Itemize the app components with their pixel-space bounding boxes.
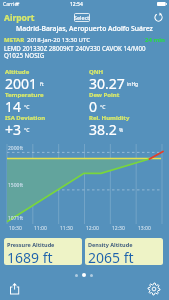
staticText: Airport — [4, 12, 35, 24]
staticText: Temperature — [5, 91, 44, 99]
staticText: Density Altitude — [88, 241, 133, 248]
staticText: 1500ft — [8, 182, 23, 189]
button[interactable]: Density Altitude — [85, 238, 163, 265]
staticText: 10:30 — [9, 225, 22, 232]
staticText: inHg — [127, 81, 139, 88]
staticText: 1071ft — [8, 215, 23, 222]
staticText: Q1025 NOSIG — [4, 51, 45, 59]
staticText: 30.27 — [89, 74, 125, 93]
staticText: Madrid-Barajas, Aeropuerto Adolfo Suárez — [16, 24, 153, 33]
staticText: Select — [74, 14, 90, 21]
staticText: Dew Point — [89, 91, 120, 99]
staticText: ft — [40, 81, 44, 88]
button[interactable]: Refresh — [152, 11, 165, 24]
staticText: 2001 — [5, 74, 38, 93]
staticText: Altitude — [5, 68, 30, 76]
staticText: Carrier — [3, 1, 20, 8]
button[interactable]: Share — [8, 281, 22, 295]
staticText: 2018-Jan-20 13:30 UTC — [27, 36, 91, 44]
staticText: METAR — [4, 36, 25, 44]
staticText: °C — [24, 127, 30, 134]
button[interactable]: Settings — [147, 282, 161, 296]
staticText: % — [119, 127, 124, 134]
staticText: 38.2 — [89, 120, 117, 139]
staticText: 12:30 — [112, 225, 125, 232]
staticText: 11:30 — [60, 225, 73, 232]
button[interactable]: Airport — [4, 12, 35, 24]
staticText: 1689 ft — [7, 248, 53, 265]
staticText: 2000ft — [8, 145, 23, 152]
staticText: +3 — [5, 120, 22, 139]
staticText: LEMD 201330Z 28009KT 240V330 CAVOK 14/M0… — [4, 44, 146, 52]
staticText: 0 — [89, 97, 98, 116]
staticText: QNH — [89, 68, 104, 76]
staticText: 11:00 — [34, 225, 47, 232]
staticText: 2065 ft — [88, 248, 134, 265]
staticText: 12:54 — [70, 1, 83, 8]
staticText: °C — [24, 104, 30, 111]
staticText: °C — [100, 104, 106, 111]
button[interactable]: Pressure Altitude — [4, 238, 82, 265]
staticText: 13:00 — [138, 225, 151, 232]
staticText: Rel. Humidity — [89, 114, 130, 122]
staticText: 12:00 — [86, 225, 99, 232]
staticText: ISA Deviation — [5, 114, 46, 122]
staticText: Pressure Altitude — [7, 241, 55, 248]
staticText: 24 min — [145, 36, 165, 44]
staticText: 14 — [5, 97, 22, 116]
button[interactable]: Select — [74, 13, 90, 22]
